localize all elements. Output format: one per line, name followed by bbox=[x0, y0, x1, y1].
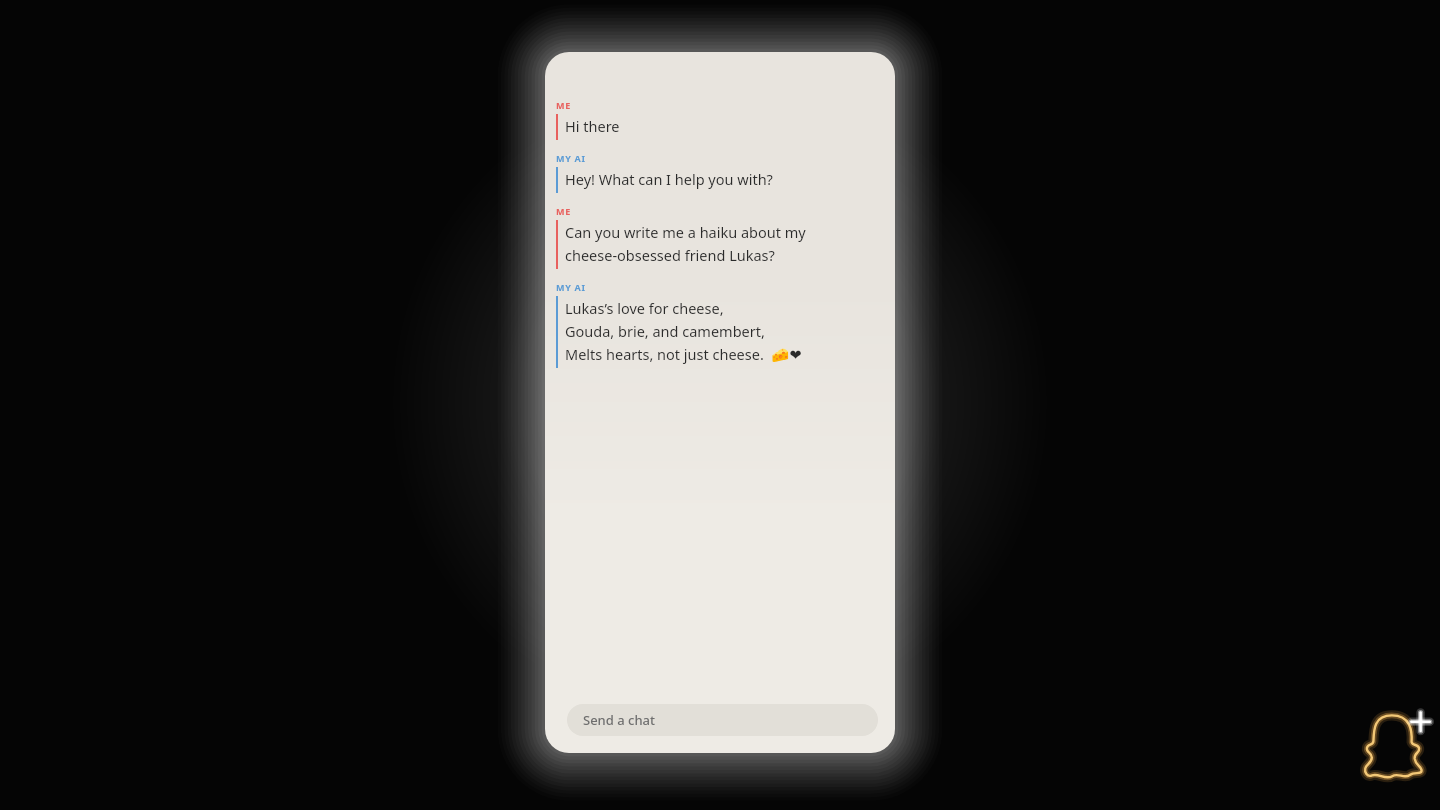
button[interactable]: MY AI bbox=[545, 152, 895, 193]
button[interactable]: ME bbox=[545, 205, 895, 269]
staticText: MY AI bbox=[556, 152, 586, 164]
button[interactable]: ME bbox=[545, 99, 895, 140]
staticText: Send a chat bbox=[583, 711, 655, 729]
staticText: ME bbox=[556, 205, 571, 217]
staticText: Lukas’s love for cheese, bbox=[565, 298, 724, 318]
staticText: Melts hearts, not just cheese. 🧀❤️ bbox=[565, 344, 802, 364]
button[interactable]: Add on Snapchat bbox=[1355, 705, 1435, 785]
button[interactable]: Send a chat bbox=[567, 704, 878, 736]
staticText: Can you write me a haiku about my bbox=[565, 222, 806, 242]
staticText: Hi there bbox=[565, 116, 620, 136]
staticText: Gouda, brie, and camembert, bbox=[565, 321, 765, 341]
staticText: Hey! What can I help you with? bbox=[565, 169, 773, 189]
staticText: cheese-obsessed friend Lukas? bbox=[565, 245, 775, 265]
staticText: ME bbox=[556, 99, 571, 111]
button[interactable]: MY AI bbox=[545, 281, 895, 368]
staticText: MY AI bbox=[556, 281, 586, 293]
